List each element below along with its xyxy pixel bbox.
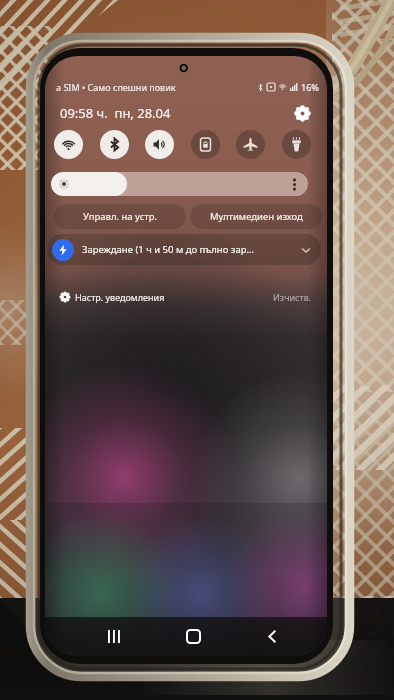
button[interactable]: Settings	[290, 101, 314, 125]
button[interactable]: Back	[255, 619, 289, 653]
staticText: Управл. на устр.	[83, 210, 158, 223]
button[interactable]: Brightness	[51, 172, 308, 196]
staticText: a SIM • Само спешни повик	[56, 81, 176, 93]
button[interactable]: Recents	[97, 619, 131, 653]
button[interactable]: Bluetooth	[100, 130, 129, 159]
staticText: Настр. уведомления	[75, 291, 165, 303]
button[interactable]: Flashlight	[282, 130, 311, 159]
button[interactable]: Настр. уведомления	[60, 291, 165, 303]
button[interactable]: Мултимедиен изход	[190, 204, 322, 229]
button[interactable]: Wi-Fi	[54, 130, 83, 159]
button[interactable]: Sound	[145, 130, 174, 159]
button[interactable]: Зареждане (1 ч и 50 м до пълно зар...	[47, 234, 321, 265]
staticText: Мултимедиен изход	[210, 210, 303, 223]
button[interactable]: Управл. на устр.	[54, 204, 186, 229]
button[interactable]: Home	[176, 619, 210, 653]
button[interactable]: Flight mode	[236, 130, 265, 159]
button[interactable]: Auto rotate	[191, 130, 220, 159]
button[interactable]: Изчиств.	[273, 291, 312, 303]
staticText: 09:58 ч. пн, 28.04	[60, 104, 171, 122]
staticText: 16%	[301, 81, 319, 93]
staticText: Зареждане (1 ч и 50 м до пълно зар...	[82, 243, 255, 256]
